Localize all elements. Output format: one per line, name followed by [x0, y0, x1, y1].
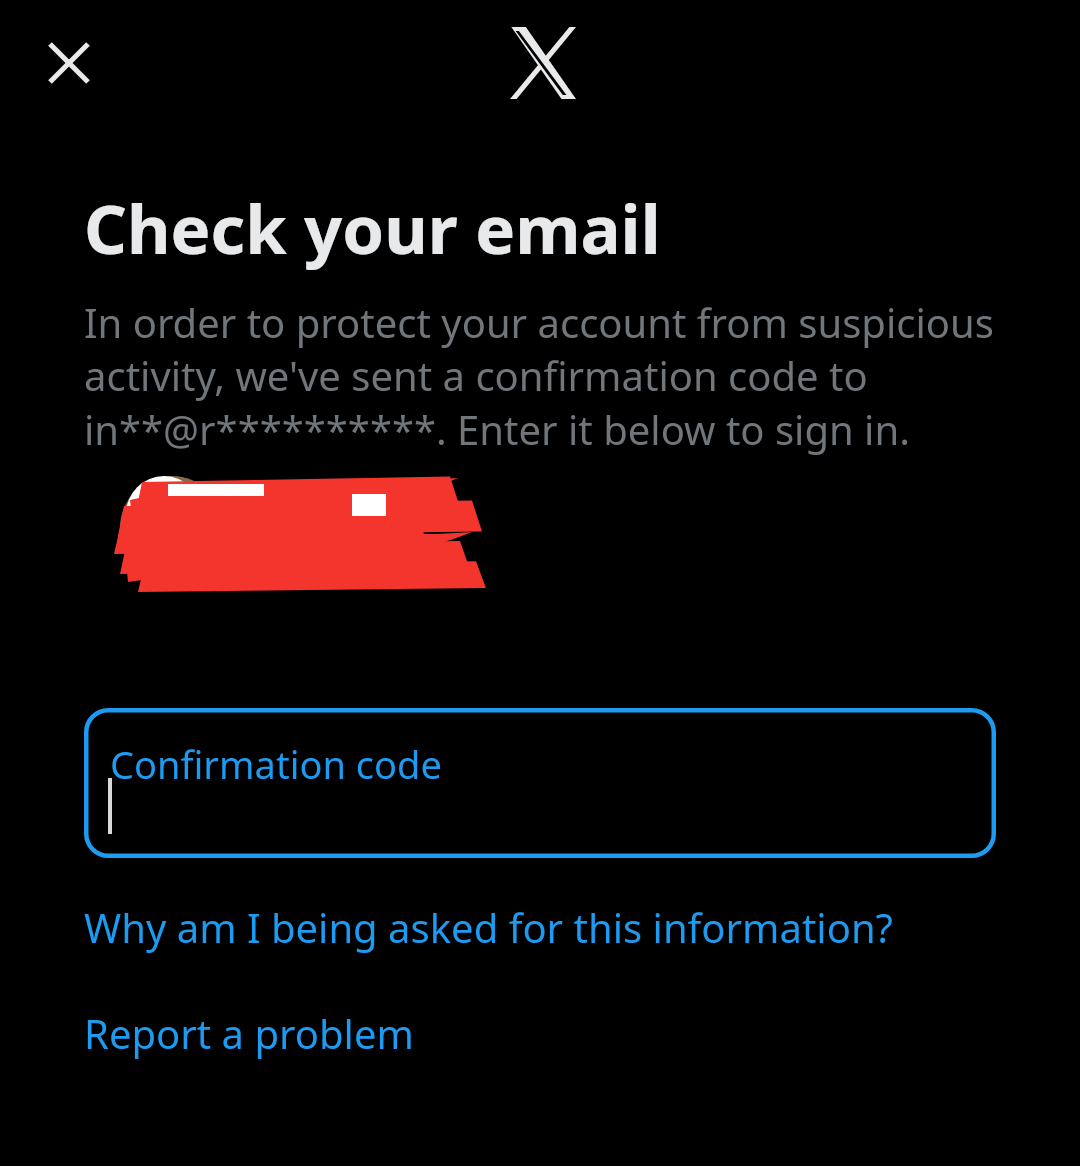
button[interactable]: Report a problem: [84, 1006, 414, 1060]
staticText: Why am I being asked for this informatio…: [84, 900, 893, 954]
staticText: Report a problem: [84, 1006, 414, 1060]
button[interactable]: Why am I being asked for this informatio…: [84, 900, 893, 954]
button[interactable]: Confirmation code: [84, 708, 996, 858]
staticText: Check your email: [84, 182, 661, 273]
staticText: Confirmation code: [110, 738, 442, 790]
staticText: In order to protect your account from su…: [84, 295, 996, 457]
button[interactable]: Close: [33, 27, 105, 99]
